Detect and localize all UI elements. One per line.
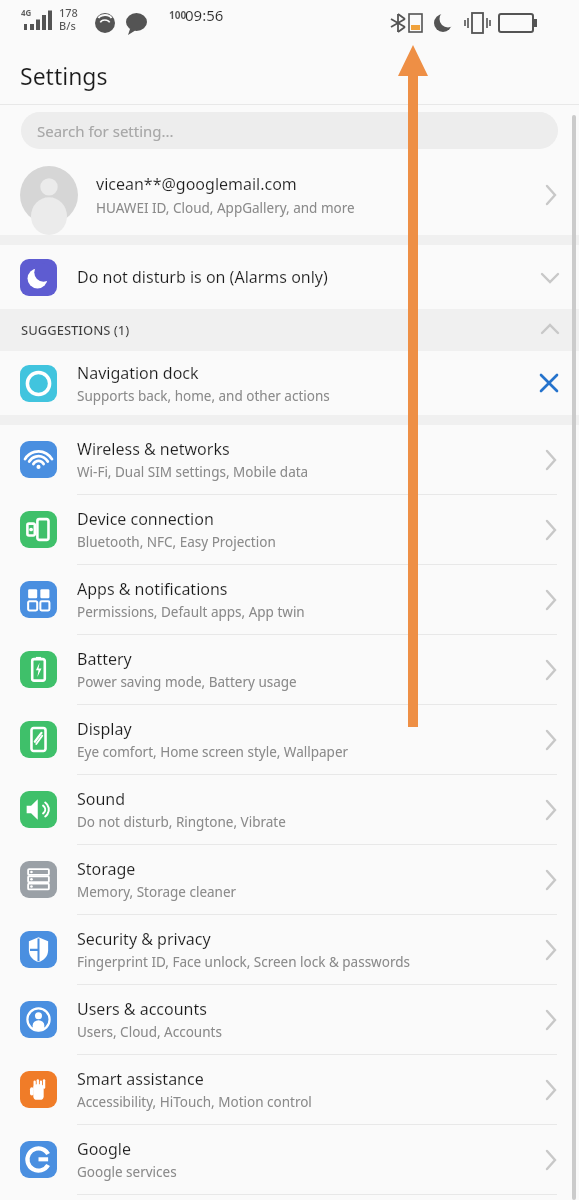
- staticText: Permissions, Default apps, App twin: [77, 603, 305, 621]
- staticText: Display: [77, 718, 132, 740]
- staticText: Apps & notifications: [77, 578, 228, 600]
- button[interactable]: Display: [0, 705, 579, 774]
- staticText: B/s: [59, 18, 76, 33]
- staticText: Battery: [77, 648, 132, 670]
- button[interactable]: Wireless & networks: [0, 425, 579, 494]
- other: Collapse: [539, 266, 561, 288]
- staticText: 100: [169, 8, 187, 22]
- button[interactable]: Smart assistance: [0, 1055, 579, 1124]
- staticText: Smart assistance: [77, 1068, 204, 1090]
- staticText: Wi-Fi, Dual SIM settings, Mobile data: [77, 463, 309, 481]
- staticText: 178: [59, 5, 78, 20]
- staticText: Google services: [77, 1163, 177, 1181]
- staticText: Accessibility, HiTouch, Motion control: [77, 1093, 312, 1111]
- staticText: Sound: [77, 788, 126, 810]
- button[interactable]: Google: [0, 1125, 579, 1194]
- button[interactable]: Users & accounts: [0, 985, 579, 1054]
- button[interactable]: Navigation dock: [0, 351, 579, 415]
- staticText: 4G: [21, 7, 32, 18]
- button[interactable]: Do not disturb is on (Alarms only): [0, 245, 579, 309]
- staticText: 09:56: [185, 5, 224, 25]
- staticText: Wireless & networks: [77, 438, 230, 460]
- button[interactable]: Storage: [0, 845, 579, 914]
- button[interactable]: System: [0, 1195, 579, 1200]
- staticText: Users & accounts: [77, 998, 207, 1020]
- staticText: Device connection: [77, 508, 214, 530]
- staticText: Storage: [77, 858, 136, 880]
- staticText: Do not disturb, Ringtone, Vibrate: [77, 813, 286, 831]
- staticText: Memory, Storage cleaner: [77, 883, 237, 901]
- button[interactable]: vicean**@googlemail.com: [0, 155, 579, 235]
- button[interactable]: SUGGESTIONS (1): [0, 309, 579, 351]
- staticText: Settings: [20, 60, 108, 91]
- staticText: Security & privacy: [77, 928, 211, 950]
- staticText: vicean**@googlemail.com: [96, 173, 297, 195]
- button[interactable]: Device connection: [0, 495, 579, 564]
- staticText: HUAWEI ID, Cloud, AppGallery, and more: [96, 199, 355, 217]
- button[interactable]: Apps & notifications: [0, 565, 579, 634]
- staticText: Navigation dock: [77, 362, 199, 384]
- staticText: Eye comfort, Home screen style, Wallpape…: [77, 743, 349, 761]
- button[interactable]: Sound: [0, 775, 579, 844]
- staticText: Do not disturb is on (Alarms only): [77, 266, 539, 288]
- staticText: Supports back, home, and other actions: [77, 387, 330, 405]
- button[interactable]: Battery: [0, 635, 579, 704]
- staticText: Google: [77, 1138, 132, 1160]
- staticText: Power saving mode, Battery usage: [77, 673, 297, 691]
- staticText: Search for setting...: [37, 121, 174, 141]
- other: Expand: [539, 319, 561, 341]
- staticText: SUGGESTIONS (1): [21, 321, 539, 339]
- button[interactable]: Search for setting...: [21, 112, 558, 149]
- staticText: Bluetooth, NFC, Easy Projection: [77, 533, 276, 551]
- button[interactable]: Security & privacy: [0, 915, 579, 984]
- button[interactable]: Dismiss suggestion: [537, 371, 561, 395]
- staticText: Fingerprint ID, Face unlock, Screen lock…: [77, 953, 410, 971]
- staticText: Users, Cloud, Accounts: [77, 1023, 222, 1041]
